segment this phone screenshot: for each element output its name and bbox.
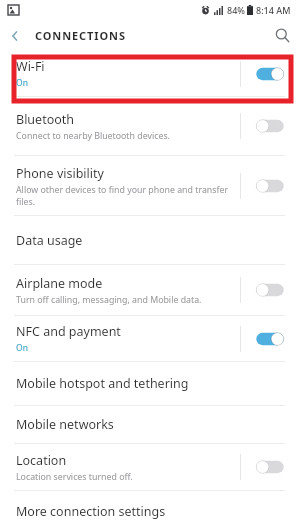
staticText: More connection settings: [16, 503, 166, 520]
staticText: On: [16, 342, 28, 354]
button[interactable]: Data usage: [0, 216, 299, 264]
staticText: NFC and payment: [16, 323, 121, 340]
staticText: Location services turned off.: [16, 471, 133, 483]
staticText: On: [16, 77, 28, 89]
button[interactable]: Airplane mode toggle: [241, 265, 299, 315]
button[interactable]: Airplane mode: [0, 265, 299, 315]
button[interactable]: Location toggle: [241, 444, 299, 490]
button[interactable]: Bluetooth: [0, 97, 299, 155]
button[interactable]: Wi-Fi: [0, 51, 299, 96]
button[interactable]: Bluetooth toggle: [241, 97, 299, 155]
staticText: Location: [16, 452, 67, 469]
button[interactable]: Phone visibility: [0, 156, 299, 215]
staticText: Mobile networks: [16, 416, 114, 433]
staticText: 8:14 AM: [256, 4, 291, 16]
staticText: Allow other devices to find your phone a…: [16, 184, 230, 207]
staticText: 84%: [227, 4, 245, 16]
staticText: CONNECTIONS: [35, 28, 126, 43]
staticText: Airplane mode: [16, 275, 103, 292]
staticText: Connect to nearby Bluetooth devices.: [16, 130, 170, 142]
button[interactable]: Location: [0, 444, 299, 490]
staticText: Bluetooth: [16, 111, 75, 128]
button[interactable]: Phone visibility toggle: [241, 156, 299, 215]
button[interactable]: Search: [265, 20, 299, 51]
button[interactable]: NFC and payment toggle: [241, 316, 299, 361]
staticText: Turn off calling, messaging, and Mobile …: [16, 294, 202, 306]
staticText: Phone visibility: [16, 165, 104, 182]
button[interactable]: Back: [0, 21, 30, 51]
button[interactable]: Mobile hotspot and tethering: [0, 362, 299, 405]
staticText: Wi-Fi: [16, 58, 45, 75]
staticText: Data usage: [16, 232, 83, 249]
staticText: Mobile hotspot and tethering: [16, 375, 189, 392]
button[interactable]: Mobile networks: [0, 406, 299, 443]
button[interactable]: Wi-Fi toggle: [241, 51, 299, 96]
button[interactable]: More connection settings: [0, 491, 299, 531]
button[interactable]: NFC and payment: [0, 316, 299, 361]
